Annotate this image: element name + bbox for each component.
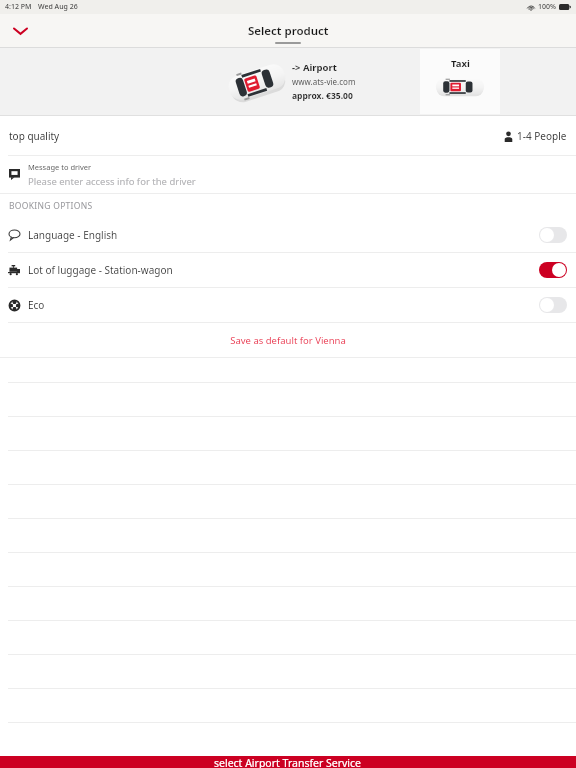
staticText: select Airport Transfer Service xyxy=(214,756,362,768)
staticText: approx. €35.00 xyxy=(292,90,353,102)
staticText: Language - English xyxy=(28,228,118,242)
button[interactable]: -> Airport xyxy=(228,61,356,102)
button[interactable]: Save as default for Vienna xyxy=(0,323,576,357)
button[interactable]: On xyxy=(539,262,567,278)
staticText: 1-4 People xyxy=(517,129,567,143)
button[interactable]: Off xyxy=(539,227,567,243)
button[interactable]: Eco xyxy=(0,288,576,322)
staticText: 100% xyxy=(538,2,556,12)
staticText: Select product xyxy=(248,23,329,39)
staticText: Wed Aug 26 xyxy=(38,2,78,12)
staticText: Lot of luggage - Station-wagon xyxy=(28,263,173,277)
staticText: Save as default for Vienna xyxy=(230,334,346,347)
staticText: 4:12 PM xyxy=(5,2,32,12)
button[interactable]: Off xyxy=(539,297,567,313)
button[interactable]: Taxi xyxy=(420,49,500,114)
staticText: Eco xyxy=(28,298,45,312)
button[interactable]: Lot of luggage - Station-wagon xyxy=(0,253,576,287)
staticText: Message to driver xyxy=(28,162,92,172)
staticText: www.ats-vie.com xyxy=(292,76,356,87)
staticText: Please enter access info for the driver xyxy=(28,175,196,188)
button[interactable]: Collapse xyxy=(6,17,34,45)
staticText: top quality xyxy=(9,129,60,143)
staticText: Taxi xyxy=(451,57,470,70)
staticText: BOOKING OPTIONS xyxy=(9,200,93,212)
staticText: -> Airport xyxy=(292,61,337,74)
button[interactable]: top quality xyxy=(0,116,576,155)
button[interactable]: Language - English xyxy=(0,218,576,252)
button[interactable]: select Airport Transfer Service xyxy=(0,756,576,768)
button[interactable]: Message to driver xyxy=(0,156,576,193)
